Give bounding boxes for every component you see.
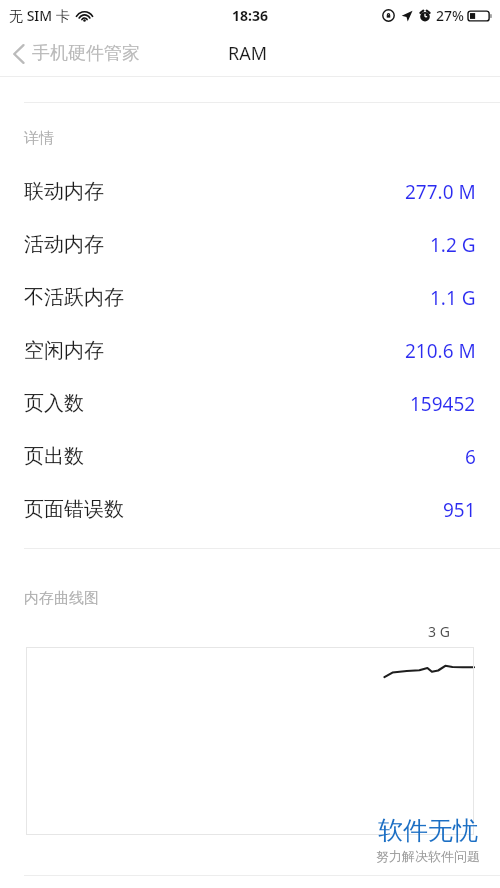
button[interactable]: 不活跃内存 (0, 271, 500, 324)
staticText: 6 (465, 444, 476, 470)
button[interactable]: 联动内存 (0, 165, 500, 218)
staticText: 951 (443, 497, 476, 523)
staticText: 手机硬件管家 (32, 42, 140, 65)
staticText: 联动内存 (24, 179, 104, 204)
button[interactable]: 页面错误数 (0, 483, 500, 536)
staticText: 277.0 M (405, 179, 476, 205)
staticText: 空闲内存 (24, 338, 104, 363)
staticText: 软件无忧 (378, 815, 478, 846)
staticText: 活动内存 (24, 232, 104, 257)
staticText: 内存曲线图 (24, 589, 99, 608)
staticText: 159452 (410, 391, 476, 417)
staticText: 1.1 G (430, 285, 476, 311)
staticText: 1.2 G (430, 232, 476, 258)
staticText: 页面错误数 (24, 497, 124, 522)
staticText: RAM (228, 41, 268, 66)
staticText: 无 SIM 卡 (9, 6, 70, 25)
button[interactable]: 手机硬件管家 (0, 36, 150, 71)
staticText: 18:36 (232, 6, 268, 25)
staticText: 27% (436, 6, 464, 25)
button[interactable]: 空闲内存 (0, 324, 500, 377)
button[interactable]: 活动内存 (0, 218, 500, 271)
staticText: 页入数 (24, 391, 84, 416)
staticText: 页出数 (24, 444, 84, 469)
staticText: 努力解决软件问题 (376, 848, 480, 864)
staticText: 210.6 M (405, 338, 476, 364)
staticText: 详情 (24, 129, 54, 148)
staticText: 不活跃内存 (24, 285, 124, 310)
button[interactable]: 页入数 (0, 377, 500, 430)
button[interactable]: 页出数 (0, 430, 500, 483)
staticText: 3 G (428, 622, 450, 641)
